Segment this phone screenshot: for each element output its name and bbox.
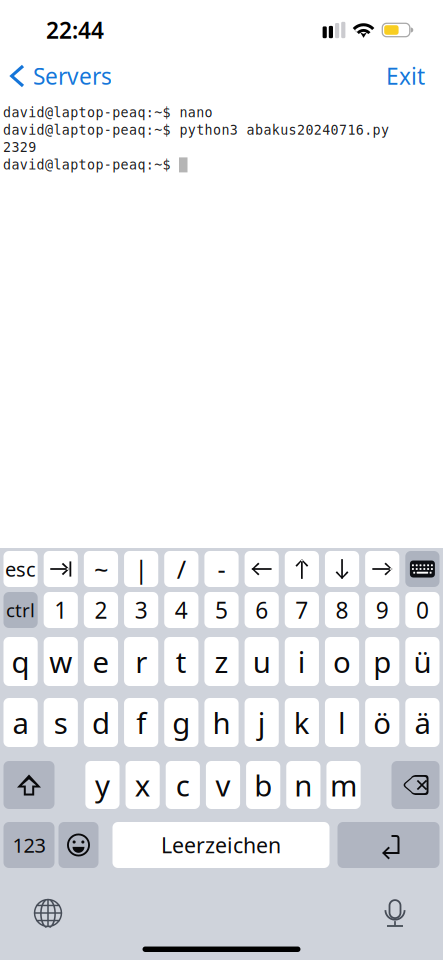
staticText: q	[12, 642, 30, 681]
staticText: h	[212, 703, 230, 742]
button[interactable]: ü	[405, 637, 439, 686]
button[interactable]: 1	[44, 592, 78, 628]
button[interactable]: Dictation	[375, 893, 415, 933]
staticText: ü	[413, 642, 431, 681]
button[interactable]	[325, 551, 359, 587]
staticText: e	[92, 642, 109, 681]
staticText: 6	[255, 595, 268, 625]
staticText: ö	[373, 703, 391, 742]
button[interactable]: c	[166, 761, 200, 809]
button[interactable]: Servers	[0, 55, 112, 97]
staticText: david@laptop-peaq:~$ python3 abakus20240…	[3, 122, 389, 138]
staticText: w	[49, 642, 72, 681]
button[interactable]: q	[3, 637, 38, 686]
staticText: x	[135, 765, 151, 804]
button[interactable]: p	[365, 637, 399, 686]
button[interactable]: y	[85, 761, 120, 809]
button[interactable]: /	[164, 551, 198, 587]
button[interactable]	[365, 551, 399, 587]
button[interactable]: Next keyboard	[28, 893, 68, 933]
button[interactable]: 9	[365, 592, 399, 628]
button[interactable]: i	[285, 637, 319, 686]
staticText: 2	[94, 595, 107, 625]
button[interactable]: esc	[3, 551, 38, 587]
button[interactable]: a	[3, 698, 38, 747]
staticText: david@laptop-peaq:~$ nano	[3, 105, 213, 120]
button[interactable]: b	[246, 761, 280, 809]
staticText: 8	[335, 595, 348, 625]
staticText: 0	[416, 595, 429, 625]
staticText: -	[217, 552, 225, 586]
button[interactable]	[391, 761, 439, 809]
button[interactable]	[405, 551, 439, 587]
button[interactable]: ~	[84, 551, 118, 587]
button[interactable]: 8	[325, 592, 359, 628]
button[interactable]: 4	[164, 592, 198, 628]
staticText: u	[253, 642, 271, 681]
staticText: f	[136, 703, 146, 742]
staticText: esc	[5, 556, 36, 582]
button[interactable]: l	[325, 698, 359, 747]
staticText: ä	[414, 703, 430, 742]
staticText: |	[134, 552, 148, 586]
button[interactable]	[245, 551, 279, 587]
button[interactable]: g	[164, 698, 198, 747]
button[interactable]: d	[84, 698, 118, 747]
button[interactable]: t	[164, 637, 198, 686]
button[interactable]: ä	[405, 698, 439, 747]
staticText: 7	[295, 595, 308, 625]
button[interactable]: 7	[285, 592, 319, 628]
staticText: Leerzeichen	[161, 831, 281, 859]
button[interactable]: -	[204, 551, 239, 587]
button[interactable]: Leerzeichen	[112, 822, 329, 868]
button[interactable]: 0	[405, 592, 439, 628]
staticText: n	[294, 765, 312, 804]
button[interactable]: |	[124, 551, 158, 587]
button[interactable]	[337, 822, 439, 868]
button[interactable]: 3	[124, 592, 158, 628]
button[interactable]: 123	[3, 822, 54, 868]
button[interactable]: m	[326, 761, 361, 809]
button[interactable]: ctrl	[3, 592, 38, 628]
staticText: Exit	[386, 61, 425, 91]
button[interactable]	[44, 551, 78, 587]
staticText: t	[176, 642, 187, 681]
button[interactable]	[58, 822, 98, 868]
button[interactable]: 2	[84, 592, 118, 628]
button[interactable]: ö	[365, 698, 399, 747]
staticText: david@laptop-peaq:~$	[3, 157, 179, 172]
button[interactable]: v	[206, 761, 240, 809]
button[interactable]: 5	[204, 592, 239, 628]
button[interactable]: s	[44, 698, 78, 747]
staticText: Servers	[33, 61, 112, 91]
button[interactable]: h	[204, 698, 239, 747]
staticText: l	[338, 703, 346, 742]
staticText: 4	[175, 595, 188, 625]
button[interactable]: r	[124, 637, 158, 686]
button[interactable]	[3, 761, 54, 809]
staticText: r	[135, 642, 147, 681]
button[interactable]	[285, 551, 319, 587]
staticText: j	[258, 703, 266, 742]
button[interactable]: x	[125, 761, 160, 809]
button[interactable]: w	[44, 637, 78, 686]
staticText: d	[92, 703, 110, 742]
staticText: 3	[135, 595, 148, 625]
button[interactable]: n	[286, 761, 320, 809]
button[interactable]: 6	[245, 592, 279, 628]
button[interactable]: k	[285, 698, 319, 747]
button[interactable]: z	[204, 637, 239, 686]
staticText: g	[172, 703, 190, 742]
button[interactable]: u	[245, 637, 279, 686]
staticText: k	[294, 703, 310, 742]
button[interactable]: f	[124, 698, 158, 747]
staticText: 22:44	[46, 15, 104, 45]
staticText: 2329	[3, 140, 36, 155]
button[interactable]: Exit	[386, 55, 443, 97]
staticText: b	[254, 765, 272, 804]
staticText: y	[95, 765, 110, 804]
button[interactable]: o	[325, 637, 359, 686]
staticText: o	[333, 642, 351, 681]
button[interactable]: e	[84, 637, 118, 686]
button[interactable]: j	[245, 698, 279, 747]
